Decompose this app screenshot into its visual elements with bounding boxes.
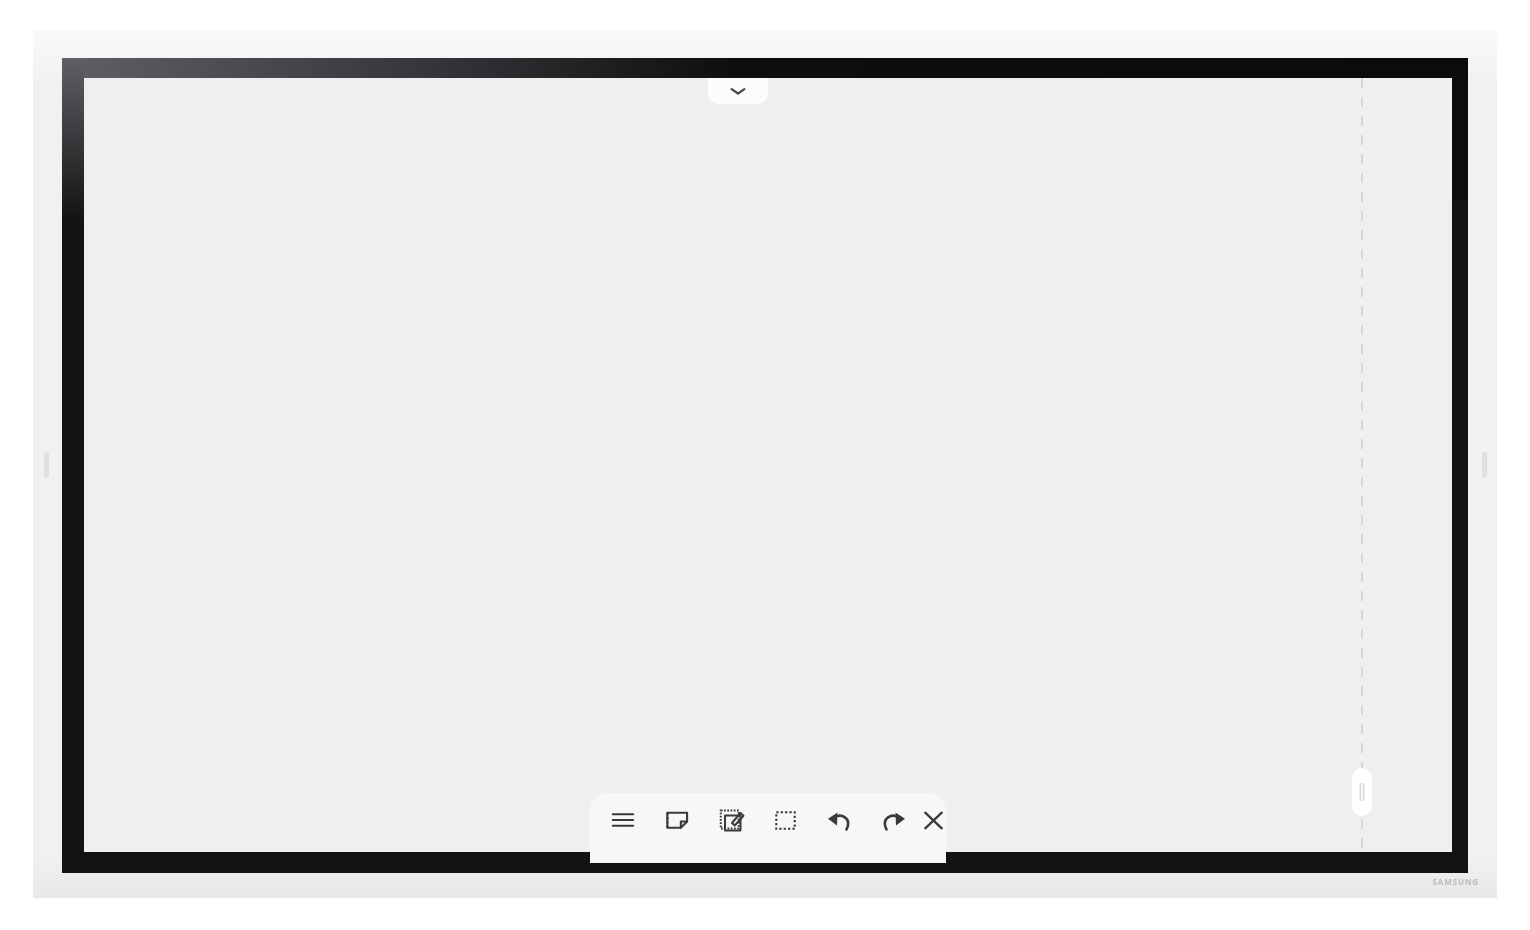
button[interactable]: Undo — [812, 793, 866, 847]
button[interactable]: Menu — [596, 793, 650, 847]
button[interactable]: Edit note — [704, 793, 758, 847]
button[interactable]: Redo — [866, 793, 920, 847]
button[interactable]: Close — [920, 793, 946, 847]
button[interactable]: Select — [758, 793, 812, 847]
button[interactable]: Resize page divider — [1352, 768, 1372, 816]
staticText: SAMSUNG — [1432, 876, 1479, 887]
button[interactable]: New note — [650, 793, 704, 847]
button[interactable]: Show toolbar — [708, 78, 768, 104]
